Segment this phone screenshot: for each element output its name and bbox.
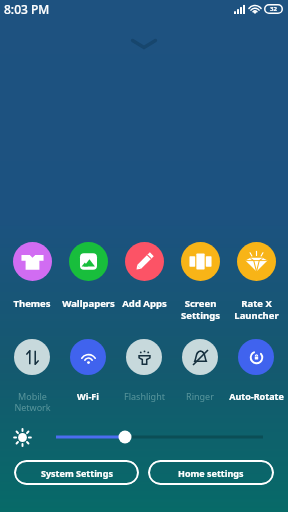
button[interactable]: Themes [4, 242, 60, 310]
staticText: Rate X Launcher [234, 297, 279, 322]
button[interactable]: Add Apps [116, 242, 172, 310]
staticText: Auto-Rotate [229, 390, 284, 402]
staticText: Wallpapers [62, 297, 115, 310]
button[interactable]: Mobile Network [4, 339, 60, 413]
staticText: Screen Settings [181, 297, 220, 322]
button[interactable]: Ringer [172, 339, 228, 402]
staticText: 32 [270, 5, 277, 13]
button[interactable]: Home settings [148, 460, 274, 485]
other: Brightness [14, 429, 31, 446]
button[interactable]: Wallpapers [60, 242, 116, 310]
staticText: Mobile Network [14, 390, 51, 413]
button[interactable]: System Settings [14, 460, 139, 485]
staticText: System Settings [41, 467, 113, 479]
button[interactable]: Flashlight [116, 339, 172, 402]
button[interactable]: Auto-Rotate [228, 339, 284, 402]
staticText: Flashlight [124, 390, 165, 402]
button[interactable]: Rate X Launcher [228, 242, 284, 322]
staticText: Add Apps [122, 297, 167, 310]
button[interactable]: Screen Settings [172, 242, 228, 322]
staticText: Ringer [186, 390, 214, 402]
staticText: Wi-Fi [77, 390, 99, 402]
button[interactable]: Wi-Fi [60, 339, 116, 402]
staticText: Home settings [178, 467, 244, 479]
staticText: 8:03 PM [4, 1, 50, 17]
staticText: Themes [13, 297, 51, 310]
